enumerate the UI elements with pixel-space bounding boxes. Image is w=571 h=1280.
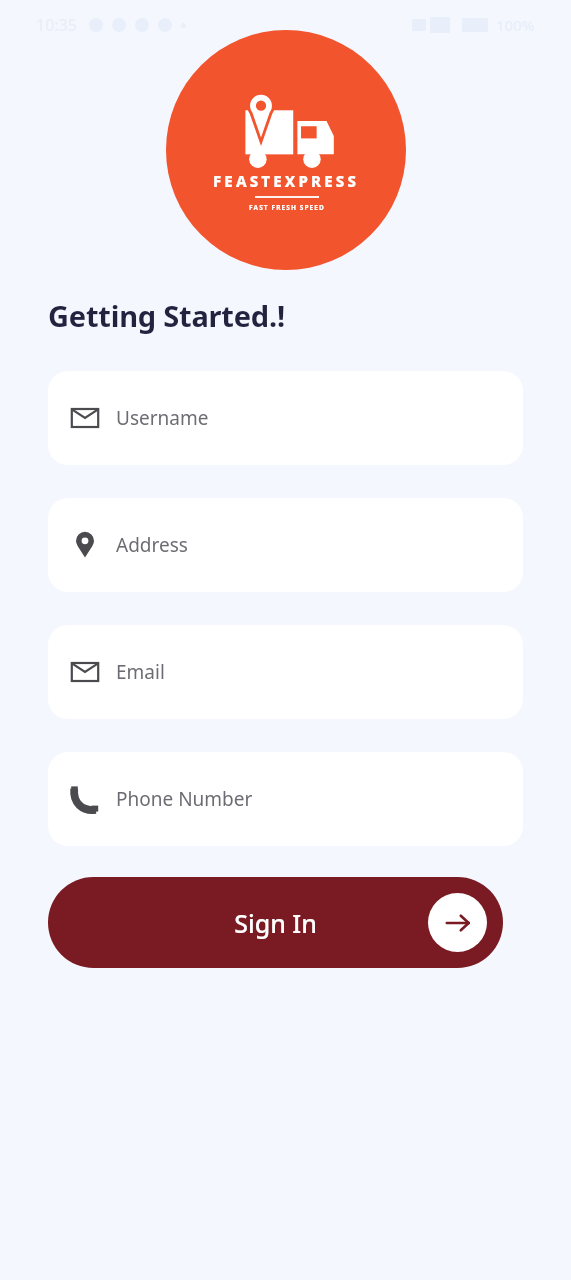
staticText: Phone Number bbox=[116, 786, 253, 812]
button[interactable]: Email bbox=[48, 625, 523, 719]
staticText: Username bbox=[116, 405, 209, 431]
button[interactable]: Address bbox=[48, 498, 523, 592]
button[interactable]: Username bbox=[48, 371, 523, 465]
button[interactable]: Sign In bbox=[48, 877, 503, 968]
staticText: 100% bbox=[496, 15, 535, 35]
staticText: FEASTEXPRESS bbox=[213, 171, 360, 191]
staticText: 10:35 bbox=[36, 14, 77, 36]
other: Proceed bbox=[428, 893, 487, 952]
button[interactable]: Phone Number bbox=[48, 752, 523, 846]
staticText: Email bbox=[116, 659, 165, 685]
staticText: FAST FRESH SPEED bbox=[249, 203, 325, 212]
staticText: Address bbox=[116, 532, 188, 558]
staticText: Sign In bbox=[48, 906, 503, 940]
staticText: Getting Started.! bbox=[48, 296, 285, 335]
